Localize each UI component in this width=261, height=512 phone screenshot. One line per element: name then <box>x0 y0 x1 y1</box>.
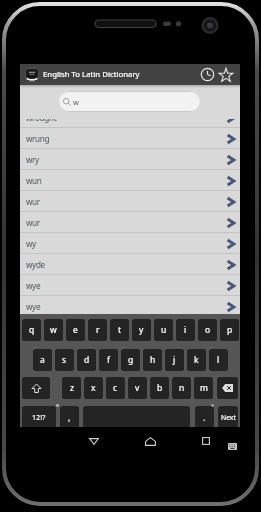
staticText: p <box>227 324 233 336</box>
staticText: k <box>194 354 199 366</box>
button[interactable]: z <box>62 377 81 399</box>
button[interactable]: r <box>88 319 107 341</box>
staticText: w <box>73 97 79 107</box>
button[interactable]: wye <box>20 296 240 314</box>
button[interactable] <box>228 443 237 450</box>
button[interactable]: wye <box>20 275 240 296</box>
button[interactable]: n <box>172 377 191 399</box>
staticText: x <box>91 382 96 394</box>
staticText: a <box>40 354 45 366</box>
button[interactable]: w <box>44 319 63 341</box>
button[interactable]: o <box>198 319 217 341</box>
staticText: e <box>73 324 78 336</box>
button[interactable] <box>137 428 163 454</box>
staticText: h <box>150 354 156 366</box>
button[interactable]: a <box>33 349 52 371</box>
button[interactable]: y <box>132 319 151 341</box>
button[interactable]: 12!? <box>22 406 56 428</box>
staticText: f <box>107 354 110 366</box>
button[interactable]: i <box>176 319 195 341</box>
button[interactable]: x <box>84 377 103 399</box>
button[interactable]: v <box>128 377 147 399</box>
button[interactable]: wy <box>20 233 240 254</box>
button[interactable]: m <box>194 377 213 399</box>
staticText: y <box>139 324 144 336</box>
staticText: r <box>96 324 100 336</box>
staticText: t <box>118 324 122 336</box>
staticText: b <box>157 382 163 394</box>
staticText: wy <box>26 238 36 249</box>
button[interactable]: wun <box>20 170 240 191</box>
button[interactable] <box>81 428 107 454</box>
staticText: wrung <box>26 133 50 144</box>
button[interactable]: , <box>60 406 79 428</box>
button[interactable]: j <box>165 349 184 371</box>
button[interactable] <box>198 64 217 85</box>
button[interactable]: g <box>121 349 140 371</box>
staticText: z <box>70 382 74 394</box>
button[interactable]: f <box>99 349 118 371</box>
staticText: wye <box>26 301 41 312</box>
button[interactable]: c <box>106 377 125 399</box>
staticText: o <box>205 324 211 336</box>
button[interactable]: w <box>58 91 201 112</box>
staticText: w <box>50 324 57 336</box>
button[interactable]: Next <box>218 406 238 428</box>
staticText: wur <box>26 196 40 207</box>
staticText: u <box>161 324 167 336</box>
staticText: wyde <box>26 259 45 270</box>
staticText: 12!? <box>32 412 46 422</box>
staticText: m <box>200 382 208 394</box>
button[interactable]: d <box>77 349 96 371</box>
staticText: n <box>179 382 185 394</box>
staticText: i <box>184 324 187 336</box>
button[interactable] <box>217 64 234 85</box>
button[interactable]: wur <box>20 191 240 212</box>
staticText: wur <box>26 217 40 228</box>
button[interactable]: wrung <box>20 128 240 149</box>
button[interactable]: l <box>209 349 228 371</box>
staticText: d <box>84 354 90 366</box>
button[interactable]: u <box>154 319 173 341</box>
button[interactable] <box>83 406 190 428</box>
staticText: v <box>135 382 140 394</box>
button[interactable]: e <box>66 319 85 341</box>
staticText: q <box>29 324 35 336</box>
button[interactable] <box>22 377 50 399</box>
button[interactable]: . <box>195 406 214 428</box>
staticText: s <box>62 354 67 366</box>
staticText: g <box>128 354 134 366</box>
staticText: . <box>203 411 206 423</box>
staticText: l <box>217 354 220 366</box>
staticText: wry <box>26 154 39 165</box>
button[interactable]: b <box>150 377 169 399</box>
button[interactable]: wry <box>20 149 240 170</box>
staticText: wye <box>26 280 41 291</box>
staticText: wrought <box>26 112 57 123</box>
button[interactable]: t <box>110 319 129 341</box>
staticText: , <box>68 411 71 423</box>
button[interactable]: wrought <box>20 107 240 128</box>
staticText: wun <box>26 175 42 186</box>
button[interactable]: h <box>143 349 162 371</box>
button[interactable]: wyde <box>20 254 240 275</box>
staticText: English To Latin Dictionary <box>43 69 140 80</box>
button[interactable] <box>217 377 238 399</box>
button[interactable]: q <box>22 319 41 341</box>
button[interactable]: s <box>55 349 74 371</box>
button[interactable]: wur <box>20 212 240 233</box>
button[interactable]: k <box>187 349 206 371</box>
staticText: c <box>113 382 118 394</box>
button[interactable] <box>193 428 219 454</box>
staticText: Next <box>221 413 236 422</box>
button[interactable]: p <box>220 319 239 341</box>
staticText: j <box>173 354 176 366</box>
